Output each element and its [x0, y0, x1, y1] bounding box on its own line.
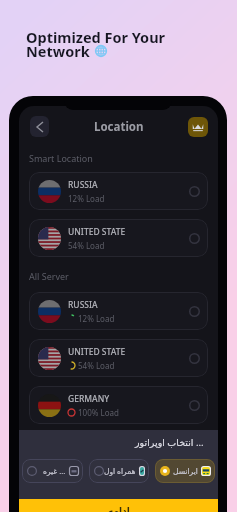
staticText: همراه اول [104, 466, 136, 476]
staticText: انتخاب اوپراتور ... [135, 436, 204, 449]
button[interactable]: GERMANY [29, 386, 208, 424]
button[interactable]: Back [30, 116, 49, 137]
staticText: Optimized For Your [26, 27, 166, 47]
button[interactable]: همراه اول [89, 459, 149, 483]
button[interactable]: ادامه [19, 499, 218, 512]
button[interactable]: RUSSIA [29, 292, 208, 330]
staticText: 100% Load [78, 407, 119, 418]
staticText: UNITED STATE [68, 346, 126, 358]
button[interactable]: UNITED STATE [29, 339, 208, 377]
staticText: 54% Load [78, 360, 115, 371]
button[interactable]: Premium [188, 117, 208, 137]
staticText: غیره ... [43, 466, 66, 476]
staticText: 12% Load [68, 193, 105, 204]
button[interactable]: UNITED STATE [29, 219, 208, 257]
staticText: 54% Load [68, 240, 105, 251]
staticText: ادامه [108, 506, 130, 512]
staticText: GERMANY [68, 393, 110, 405]
staticText: All Server [29, 270, 69, 282]
staticText: Smart Location [29, 152, 93, 164]
button[interactable]: ایرانسل [155, 459, 215, 483]
button[interactable]: غیره ... [22, 459, 83, 483]
staticText: Location [94, 119, 144, 135]
staticText: UNITED STATE [68, 226, 126, 238]
staticText: RUSSIA [68, 179, 98, 191]
staticText: 12% Load [78, 313, 115, 324]
staticText: ایرانسل [173, 467, 198, 476]
staticText: RUSSIA [68, 299, 98, 311]
staticText: Network [26, 41, 90, 61]
button[interactable]: RUSSIA [29, 172, 208, 210]
